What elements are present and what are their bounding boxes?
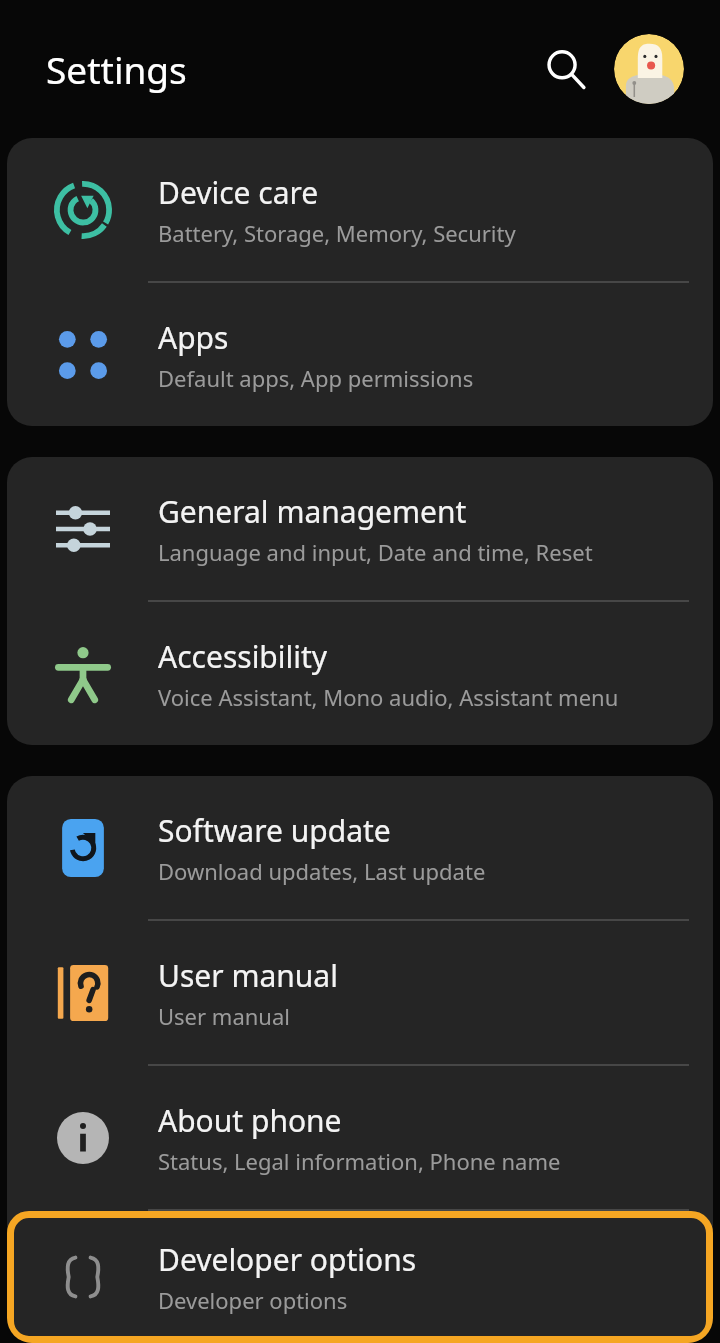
staticText: Device care bbox=[158, 172, 319, 213]
staticText: User manual bbox=[158, 1001, 290, 1031]
button[interactable]: General management bbox=[7, 457, 713, 600]
button[interactable]: Account bbox=[614, 34, 684, 104]
button[interactable]: Device care bbox=[7, 138, 713, 281]
staticText: Developer options bbox=[158, 1239, 417, 1280]
button[interactable]: Accessibility bbox=[7, 602, 713, 745]
staticText: User manual bbox=[158, 955, 338, 996]
button[interactable]: About phone bbox=[7, 1066, 713, 1209]
staticText: Status, Legal information, Phone name bbox=[158, 1146, 561, 1176]
staticText: Download updates, Last update bbox=[158, 856, 486, 886]
staticText: Language and input, Date and time, Reset bbox=[158, 537, 593, 567]
button[interactable]: Developer options bbox=[7, 1211, 713, 1343]
staticText: Settings bbox=[46, 44, 187, 94]
button[interactable]: User manual bbox=[7, 921, 713, 1064]
button[interactable]: Search bbox=[532, 36, 598, 102]
button[interactable]: Software update bbox=[7, 776, 713, 919]
staticText: Software update bbox=[158, 810, 391, 851]
button[interactable]: Apps bbox=[7, 283, 713, 426]
staticText: Voice Assistant, Mono audio, Assistant m… bbox=[158, 682, 619, 712]
staticText: Accessibility bbox=[158, 636, 328, 677]
staticText: Battery, Storage, Memory, Security bbox=[158, 218, 516, 248]
staticText: General management bbox=[158, 491, 467, 532]
staticText: Developer options bbox=[158, 1285, 348, 1315]
staticText: Apps bbox=[158, 317, 229, 358]
staticText: About phone bbox=[158, 1100, 342, 1141]
staticText: Default apps, App permissions bbox=[158, 363, 474, 393]
